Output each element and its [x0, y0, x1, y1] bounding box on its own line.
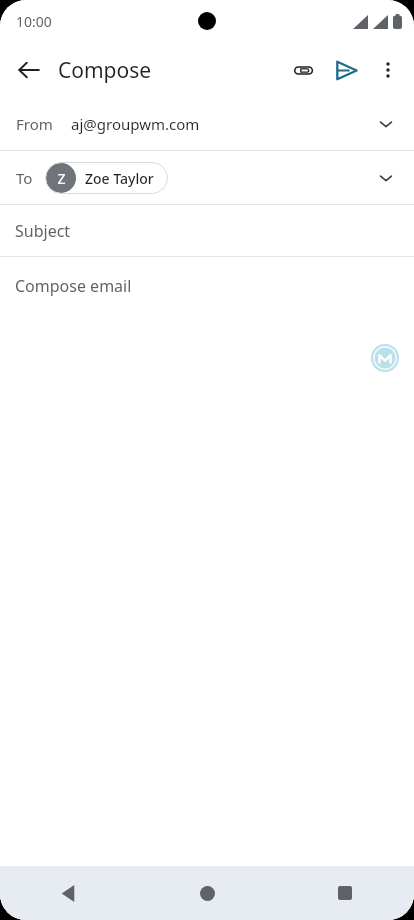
staticText: Z: [57, 169, 66, 188]
button[interactable]: Compose email: [0, 257, 414, 920]
button[interactable]: Home: [138, 866, 276, 920]
button[interactable]: Recent apps: [276, 866, 414, 920]
staticText: Zoe Taylor: [85, 169, 154, 188]
staticText: 10:00: [16, 12, 52, 31]
button[interactable]: Send: [324, 48, 368, 92]
staticText: Compose: [58, 56, 152, 85]
button[interactable]: From: [0, 98, 414, 150]
staticText: To: [16, 168, 33, 188]
button[interactable]: Back: [0, 866, 138, 920]
button[interactable]: More options: [368, 50, 408, 90]
staticText: aj@groupwm.com: [71, 114, 200, 134]
button[interactable]: Z: [45, 162, 168, 194]
button[interactable]: Back: [8, 49, 50, 91]
button[interactable]: To: [0, 151, 414, 204]
staticText: Subject: [15, 220, 71, 242]
staticText: Compose email: [15, 275, 132, 297]
button[interactable]: Attach file: [280, 48, 324, 92]
staticText: From: [16, 114, 53, 134]
button[interactable]: Subject: [0, 205, 414, 256]
